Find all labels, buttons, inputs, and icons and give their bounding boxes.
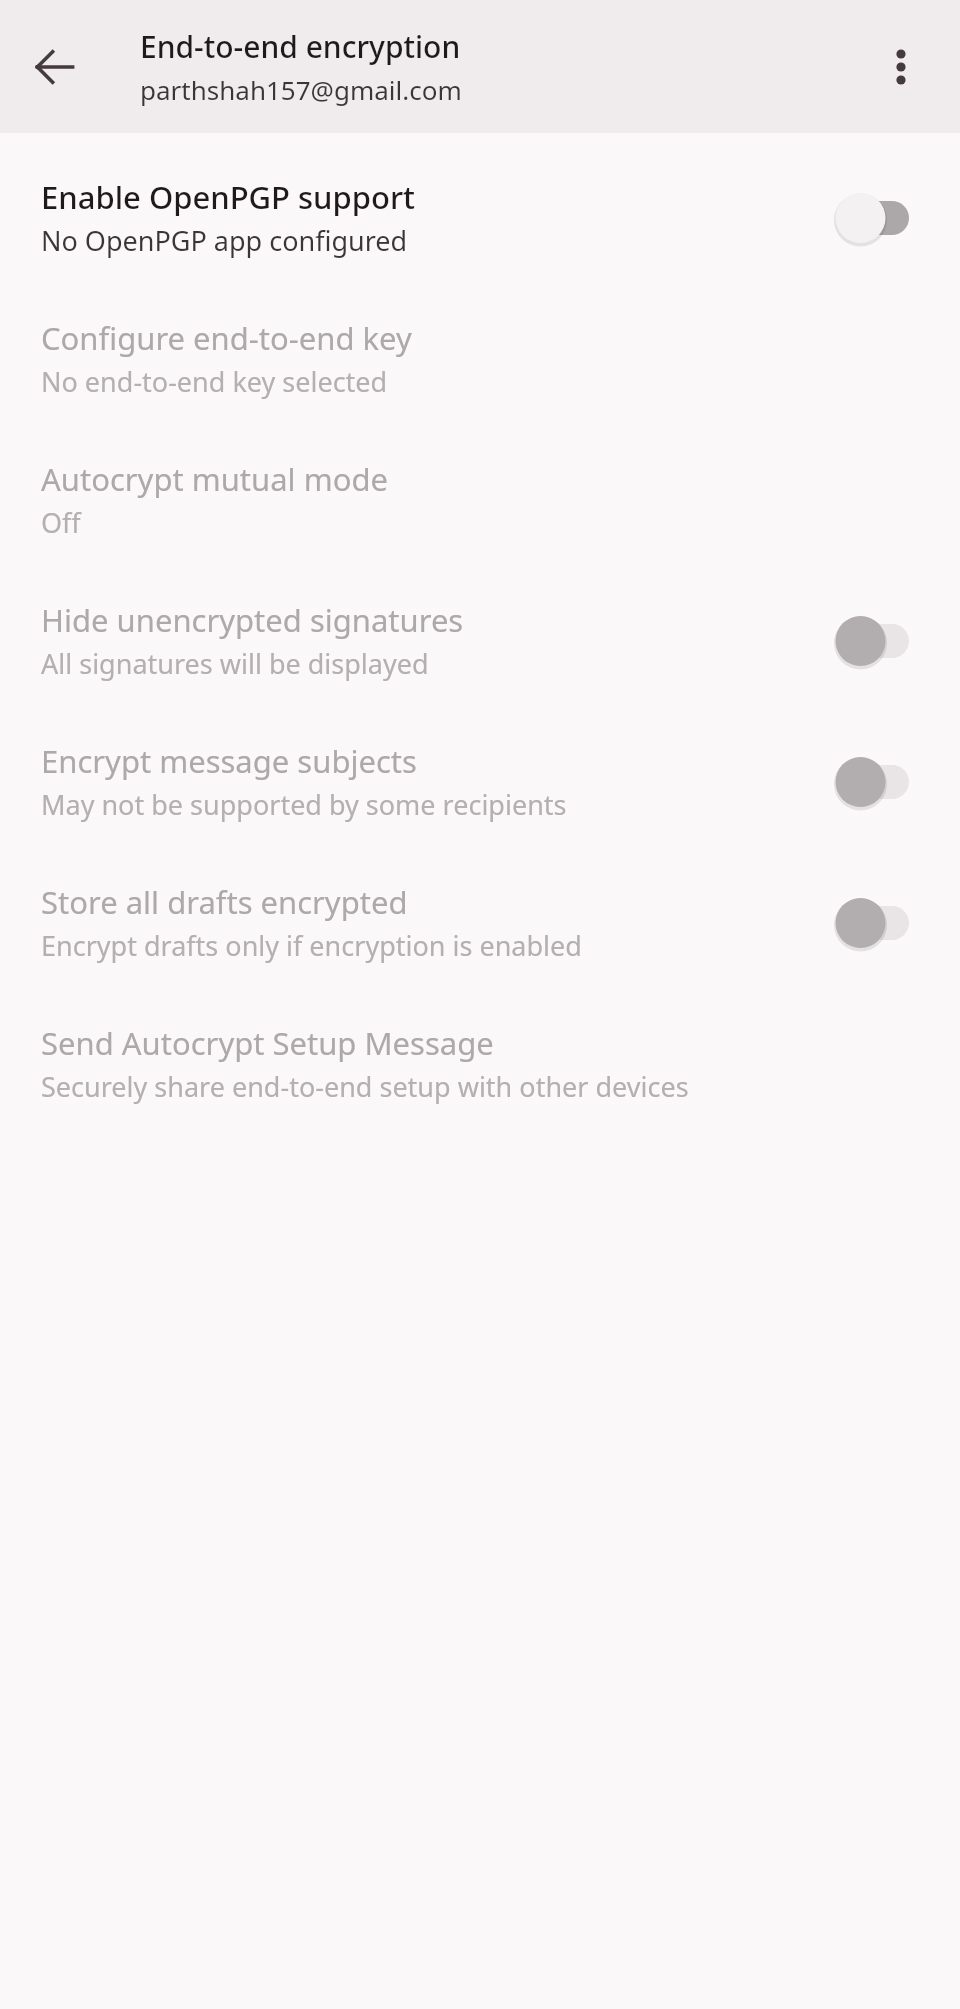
staticText: Store all drafts encrypted xyxy=(41,881,408,923)
staticText: Enable OpenPGP support xyxy=(41,176,415,218)
button[interactable]: Enable OpenPGP support xyxy=(0,147,960,288)
staticText: Autocrypt mutual mode xyxy=(41,458,388,500)
staticText: End-to-end encryption xyxy=(140,26,461,67)
button[interactable]: Hide unencrypted signatures xyxy=(0,570,960,711)
button[interactable]: Toggle xyxy=(820,601,930,681)
staticText: Encrypt message subjects xyxy=(41,740,417,782)
staticText: Send Autocrypt Setup Message xyxy=(41,1022,494,1064)
staticText: May not be supported by some recipients xyxy=(41,786,567,823)
staticText: No OpenPGP app configured xyxy=(41,222,408,259)
button[interactable]: Navigate up xyxy=(10,22,100,112)
button[interactable]: Toggle xyxy=(820,742,930,822)
button[interactable]: Toggle xyxy=(820,178,930,258)
staticText: Securely share end-to-end setup with oth… xyxy=(41,1068,689,1105)
staticText: Off xyxy=(41,504,81,541)
button[interactable]: More options xyxy=(856,22,946,112)
staticText: Hide unencrypted signatures xyxy=(41,599,464,641)
button[interactable]: Autocrypt mutual mode xyxy=(0,429,960,570)
staticText: No end-to-end key selected xyxy=(41,363,388,400)
staticText: All signatures will be displayed xyxy=(41,645,429,682)
button[interactable]: Send Autocrypt Setup Message xyxy=(0,993,960,1134)
staticText: Encrypt drafts only if encryption is ena… xyxy=(41,927,582,964)
button[interactable]: Configure end-to-end key xyxy=(0,288,960,429)
button[interactable]: Encrypt message subjects xyxy=(0,711,960,852)
button[interactable]: Store all drafts encrypted xyxy=(0,852,960,993)
staticText: Configure end-to-end key xyxy=(41,317,412,359)
button[interactable]: Toggle xyxy=(820,883,930,963)
staticText: parthshah157@gmail.com xyxy=(140,72,462,107)
